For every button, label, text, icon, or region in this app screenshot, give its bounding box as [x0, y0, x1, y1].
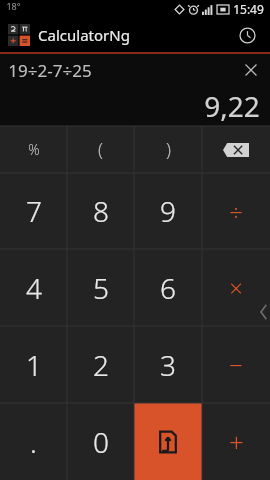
staticText: ÷	[229, 195, 243, 228]
button[interactable]: Clear	[236, 55, 266, 85]
staticText: 19÷2-7÷25	[8, 59, 92, 82]
staticText: (	[98, 137, 103, 162]
staticText: 7	[26, 192, 42, 230]
button[interactable]: 7	[0, 173, 67, 249]
button[interactable]: Equals	[134, 403, 202, 480]
staticText: CalculatorNg	[38, 25, 130, 45]
button[interactable]: 3	[134, 326, 202, 403]
staticText: 3	[160, 346, 176, 384]
staticText: %	[28, 140, 40, 159]
staticText: .	[30, 423, 37, 461]
staticText: +	[229, 424, 244, 459]
button[interactable]: 8	[67, 173, 134, 249]
staticText: ×	[229, 271, 243, 304]
staticText: 9,22	[204, 87, 260, 125]
button[interactable]: Backspace	[202, 126, 270, 173]
button[interactable]: ÷	[202, 173, 270, 249]
button[interactable]: −	[202, 326, 270, 403]
button[interactable]: +	[202, 403, 270, 480]
staticText: 5	[93, 269, 109, 307]
button[interactable]: 4	[0, 249, 67, 326]
staticText: )	[166, 137, 171, 162]
button[interactable]: 9	[134, 173, 202, 249]
button[interactable]: )	[134, 126, 202, 173]
staticText: 18°	[6, 0, 21, 12]
staticText: 0	[93, 423, 109, 461]
button[interactable]: (	[67, 126, 134, 173]
button[interactable]: 0	[67, 403, 134, 480]
button[interactable]: ×	[202, 249, 270, 326]
staticText: −	[229, 348, 243, 381]
staticText: 2	[93, 346, 109, 384]
staticText: 9	[160, 192, 176, 230]
button[interactable]: 6	[134, 249, 202, 326]
staticText: 4	[26, 269, 42, 307]
staticText: 6	[160, 269, 176, 307]
staticText: 1	[26, 346, 42, 384]
button[interactable]: .	[0, 403, 67, 480]
staticText: 15:49	[233, 1, 264, 17]
staticText: 8	[93, 192, 109, 230]
button[interactable]: History	[232, 20, 262, 50]
button[interactable]: %	[0, 126, 67, 173]
button[interactable]: 5	[67, 249, 134, 326]
button[interactable]: 2	[67, 326, 134, 403]
button[interactable]: 1	[0, 326, 67, 403]
